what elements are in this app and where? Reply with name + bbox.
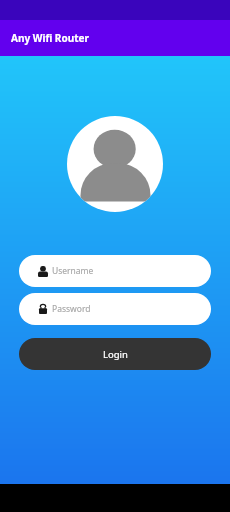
staticText: Password — [52, 303, 91, 315]
button[interactable]: Username — [19, 255, 211, 287]
button[interactable]: Profile picture — [67, 116, 163, 212]
button[interactable]: Password — [19, 293, 211, 325]
staticText: Username — [52, 265, 94, 277]
button[interactable]: Any Wifi Router — [0, 20, 230, 56]
staticText: Login — [103, 348, 128, 361]
staticText: Any Wifi Router — [11, 31, 89, 45]
button[interactable]: Login — [19, 338, 211, 370]
